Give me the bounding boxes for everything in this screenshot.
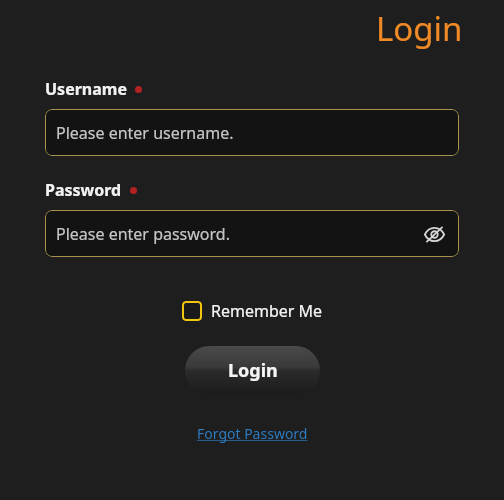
staticText: Remember Me	[211, 300, 323, 322]
button[interactable]: Please enter username.	[45, 109, 459, 156]
staticText: Username	[45, 78, 127, 100]
staticText: Password	[45, 179, 122, 201]
staticText: Please enter password.	[56, 223, 230, 245]
button[interactable]: Login	[185, 346, 320, 395]
button[interactable]: Show password	[419, 219, 449, 249]
button[interactable]: Please enter password.	[45, 210, 459, 257]
staticText: Forgot Password	[197, 424, 308, 443]
staticText: Please enter username.	[56, 122, 234, 144]
staticText: Login	[228, 358, 278, 383]
staticText: Login	[376, 6, 463, 51]
button[interactable]: Remember Me	[180, 298, 325, 324]
button[interactable]: Forgot Password	[194, 422, 311, 445]
